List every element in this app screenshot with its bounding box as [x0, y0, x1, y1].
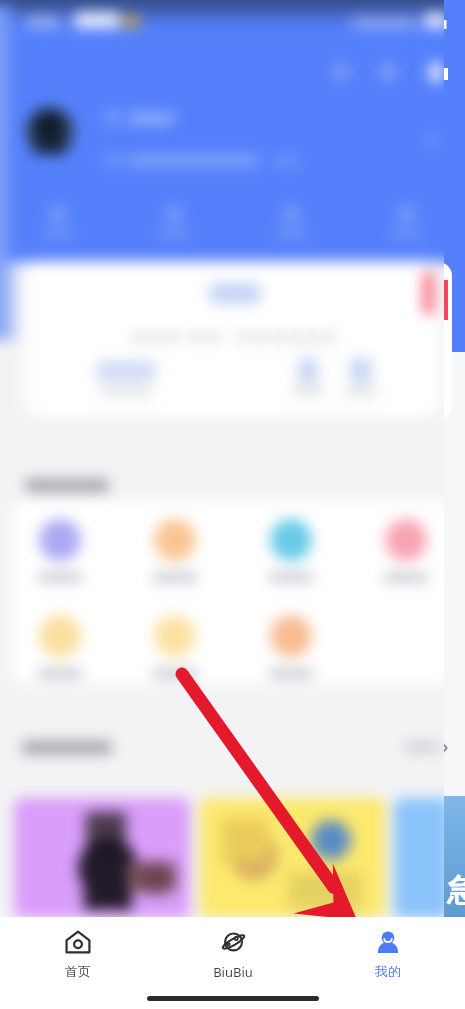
staticText: Baidu — [350, 935, 413, 965]
button[interactable]: 首页 — [0, 917, 155, 979]
other: 首页 — [65, 930, 91, 956]
other: BiuBiu — [220, 930, 246, 956]
button[interactable]: 我的 — [310, 917, 465, 979]
staticText: jingyan.baidu.com — [361, 965, 448, 979]
staticText: 我的 — [375, 963, 401, 979]
button[interactable]: BiuBiu — [155, 917, 310, 981]
staticText: 急诊 — [447, 871, 465, 910]
staticText: 首页 — [65, 963, 91, 979]
staticText: BiuBiu — [213, 963, 253, 981]
other: 我的 — [375, 930, 401, 956]
